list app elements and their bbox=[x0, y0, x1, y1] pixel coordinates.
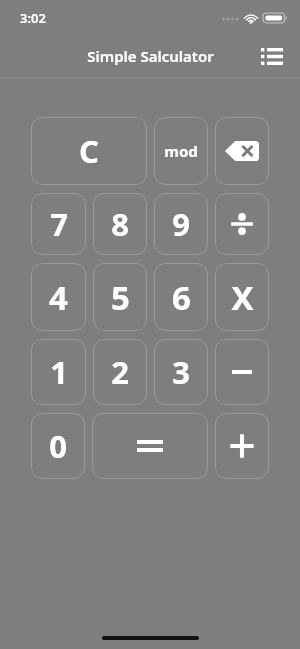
staticText: Simple Salculator bbox=[87, 46, 214, 66]
button[interactable]: 8 bbox=[93, 193, 147, 255]
button[interactable]: 5 bbox=[93, 263, 147, 331]
staticText: 6 bbox=[172, 275, 191, 320]
staticText: mod bbox=[164, 141, 198, 161]
staticText: 9 bbox=[172, 203, 190, 245]
button[interactable]: 1 bbox=[31, 339, 86, 405]
staticText: 7 bbox=[50, 203, 68, 245]
button[interactable]: Backspace bbox=[215, 413, 269, 479]
staticText: C bbox=[79, 130, 99, 172]
button[interactable]: 6 bbox=[154, 263, 208, 331]
button[interactable]: mod bbox=[154, 117, 208, 185]
button[interactable]: Backspace bbox=[215, 193, 269, 255]
button[interactable]: Backspace bbox=[215, 117, 269, 185]
staticText: X bbox=[231, 275, 254, 320]
staticText: 0 bbox=[49, 425, 67, 467]
button[interactable]: 7 bbox=[31, 193, 86, 255]
button[interactable]: 4 bbox=[31, 263, 86, 331]
button[interactable]: History list bbox=[252, 36, 292, 76]
button[interactable]: Backspace bbox=[215, 339, 269, 405]
button[interactable]: C bbox=[31, 117, 147, 185]
staticText: 8 bbox=[111, 203, 129, 245]
button[interactable]: X bbox=[215, 263, 269, 331]
button[interactable]: 3 bbox=[154, 339, 208, 405]
staticText: 4 bbox=[49, 275, 68, 320]
button[interactable]: 0 bbox=[31, 413, 85, 479]
staticText: 3 bbox=[172, 351, 190, 393]
button[interactable]: Backspace bbox=[92, 413, 208, 479]
staticText: 2 bbox=[111, 351, 129, 393]
button[interactable]: 9 bbox=[154, 193, 208, 255]
staticText: 1 bbox=[50, 351, 68, 393]
button[interactable]: 2 bbox=[93, 339, 147, 405]
staticText: 3:02 bbox=[20, 9, 46, 27]
staticText: 5 bbox=[111, 275, 130, 320]
